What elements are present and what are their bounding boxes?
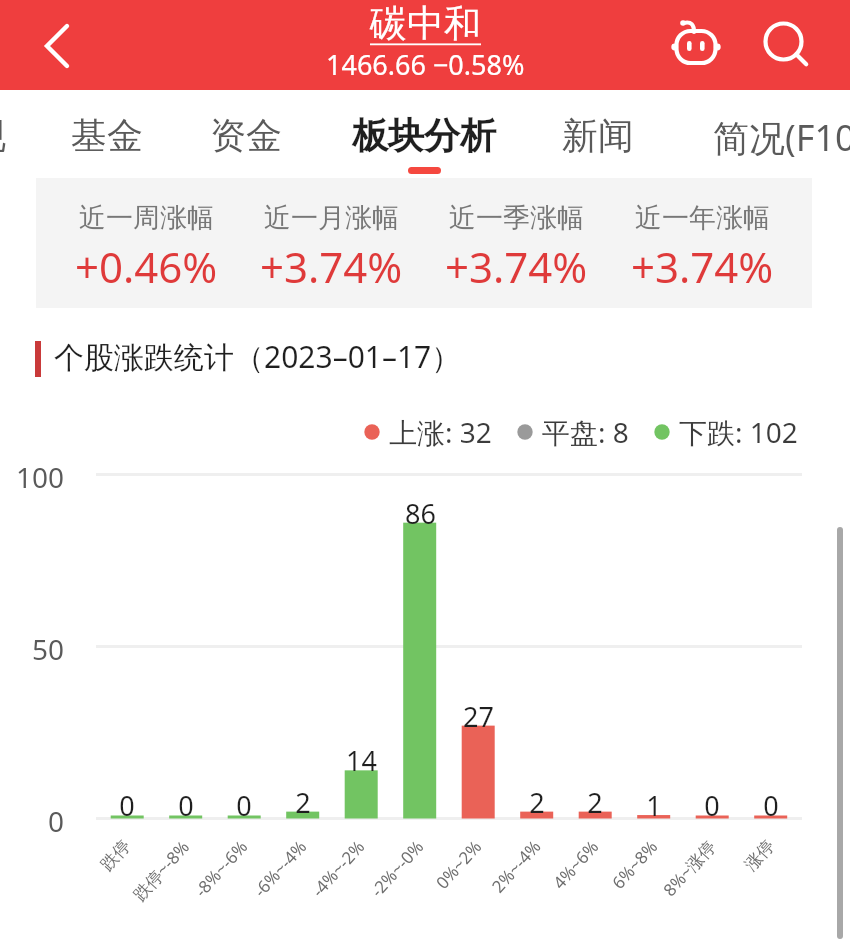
staticText: 近一月涨幅	[264, 201, 399, 235]
staticText: 近一周涨幅	[79, 201, 214, 235]
staticText: 8%~涨停	[658, 835, 721, 901]
button[interactable]: 基金	[7, 90, 207, 178]
staticText: -6%~-4%	[248, 835, 312, 902]
staticText: 14	[346, 742, 377, 779]
button[interactable]: 近一年涨幅	[610, 178, 795, 308]
staticText: 发现	[0, 113, 6, 158]
button[interactable]: 发现	[0, 90, 70, 178]
staticText: 2%~-4%	[486, 835, 545, 897]
button[interactable]: Back	[28, 17, 84, 73]
staticText: 1	[646, 787, 662, 824]
staticText: 新闻	[562, 113, 634, 158]
button[interactable]: 板块分析	[324, 90, 524, 178]
staticText: 简况(F10)	[713, 113, 850, 162]
staticText: +3.74%	[445, 238, 588, 295]
staticText: 1466.66 −0.58%	[326, 46, 525, 83]
staticText: 27	[463, 698, 494, 735]
staticText: 6%~8%	[607, 835, 662, 893]
staticText: 2	[529, 784, 545, 821]
staticText: 上涨: 32	[389, 413, 492, 451]
staticText: 2	[295, 784, 311, 821]
button[interactable]: 新闻	[498, 90, 698, 178]
staticText: 0%~2%	[431, 835, 486, 893]
staticText: 0	[119, 787, 135, 824]
staticText: 4%~6%	[548, 835, 603, 893]
button[interactable]: Search	[754, 13, 814, 73]
staticText: 0	[48, 802, 65, 840]
staticText: 平盘: 8	[542, 413, 629, 451]
staticText: 涨停	[740, 836, 779, 875]
staticText: 0	[236, 787, 252, 824]
staticText: -8%~-6%	[189, 835, 253, 902]
button[interactable]: 简况(F10)	[690, 90, 850, 178]
staticText: 跌停	[96, 836, 135, 875]
staticText: 资金	[210, 113, 282, 158]
staticText: 近一季涨幅	[449, 201, 584, 235]
button[interactable]: AI assistant	[666, 13, 726, 73]
button[interactable]: 资金	[146, 90, 346, 178]
button[interactable]: 近一季涨幅	[424, 178, 609, 308]
staticText: -4%~-2%	[306, 835, 370, 902]
button[interactable]: 近一周涨幅	[54, 178, 239, 308]
staticText: 0	[178, 787, 194, 824]
staticText: +0.46%	[75, 238, 218, 295]
staticText: 2	[587, 784, 603, 821]
staticText: 50	[32, 630, 65, 668]
staticText: 板块分析	[352, 113, 496, 158]
staticText: 碳中和	[370, 0, 481, 47]
staticText: 86	[405, 495, 436, 532]
staticText: 个股涨跌统计（2023–01–17）	[54, 336, 462, 377]
staticText: 近一年涨幅	[635, 201, 770, 235]
staticText: 0	[763, 787, 779, 824]
button[interactable]: 平盘: 8	[517, 413, 629, 451]
staticText: -2%~-0%	[365, 835, 429, 902]
staticText: 跌停~-8%	[128, 835, 194, 905]
button[interactable]: 下跌: 102	[654, 413, 798, 451]
staticText: 100	[16, 458, 65, 496]
button[interactable]: 近一月涨幅	[239, 178, 424, 308]
staticText: +3.74%	[260, 238, 403, 295]
button[interactable]: 上涨: 32	[364, 413, 492, 451]
staticText: +3.74%	[631, 238, 774, 295]
staticText: 基金	[71, 113, 143, 158]
staticText: 下跌: 102	[679, 413, 798, 451]
staticText: 0	[704, 787, 720, 824]
